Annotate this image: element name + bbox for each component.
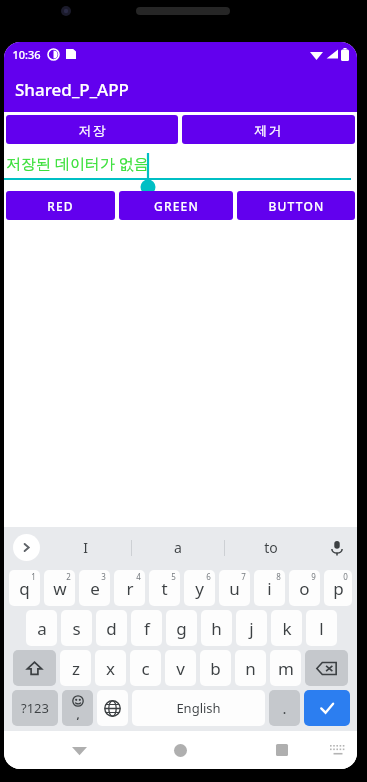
staticText: 8	[276, 571, 281, 582]
button[interactable]: Enter	[304, 690, 350, 726]
button[interactable]: i	[254, 570, 285, 606]
button[interactable]: u	[219, 570, 250, 606]
other: Emoji	[62, 690, 93, 726]
button[interactable]: I	[40, 527, 131, 568]
staticText: RED	[47, 198, 74, 214]
button[interactable]: p	[324, 570, 352, 606]
staticText: z	[72, 657, 80, 680]
staticText: a	[174, 538, 182, 557]
button[interactable]: GREEN	[119, 191, 233, 220]
button[interactable]: b	[200, 650, 231, 686]
staticText: o	[299, 577, 310, 600]
staticText: p	[333, 577, 344, 600]
button[interactable]: s	[61, 610, 92, 646]
button[interactable]: 제거	[182, 115, 355, 144]
button[interactable]: Expand toolbar	[13, 534, 40, 561]
staticText: 0	[343, 571, 348, 582]
button[interactable]: 저장된 데이터가 없음	[4, 153, 357, 185]
staticText: 1	[31, 571, 36, 582]
button[interactable]: m	[270, 650, 301, 686]
button[interactable]: d	[96, 610, 127, 646]
button[interactable]: Recent apps	[263, 731, 301, 769]
staticText: w	[53, 577, 67, 600]
staticText: 저장	[78, 122, 107, 138]
staticText: x	[106, 657, 115, 680]
button[interactable]: k	[271, 610, 302, 646]
button[interactable]: q	[9, 570, 40, 606]
staticText: Shared_P_APP	[15, 78, 129, 101]
button[interactable]: Change language	[97, 690, 128, 726]
button[interactable]: Back	[60, 731, 98, 769]
staticText: BUTTON	[268, 198, 325, 214]
button[interactable]: l	[306, 610, 337, 646]
button[interactable]: Home	[161, 731, 199, 769]
staticText: e	[90, 577, 100, 600]
staticText: n	[245, 657, 256, 680]
button[interactable]: r	[114, 570, 145, 606]
staticText: English	[176, 699, 221, 717]
staticText: 9	[311, 571, 316, 582]
button[interactable]: English	[132, 690, 265, 726]
button[interactable]: RED	[6, 191, 115, 220]
button[interactable]: Shift	[13, 650, 56, 686]
staticText: to	[264, 538, 278, 557]
button[interactable]: f	[131, 610, 162, 646]
other: Enter	[304, 690, 350, 726]
other: Shift	[13, 650, 56, 686]
staticText: 2	[66, 571, 71, 582]
staticText: m	[278, 657, 294, 680]
button[interactable]: c	[130, 650, 161, 686]
button[interactable]: o	[289, 570, 320, 606]
button[interactable]: y	[184, 570, 215, 606]
staticText: t	[161, 577, 168, 600]
staticText: 5	[171, 571, 176, 582]
other: Backspace	[305, 650, 348, 686]
staticText: g	[176, 617, 187, 640]
staticText: i	[267, 577, 272, 600]
staticText: I	[83, 538, 88, 557]
staticText: 저장된 데이터가 없음	[6, 153, 149, 173]
staticText: l	[319, 617, 324, 640]
button[interactable]: Emoji	[62, 690, 93, 726]
staticText: r	[126, 577, 134, 600]
button[interactable]: n	[235, 650, 266, 686]
button[interactable]: z	[60, 650, 91, 686]
staticText: .	[282, 698, 287, 718]
button[interactable]: x	[95, 650, 126, 686]
staticText: a	[37, 617, 47, 640]
staticText: 제거	[254, 122, 283, 138]
button[interactable]: e	[79, 570, 110, 606]
staticText: q	[19, 577, 30, 600]
button[interactable]: Backspace	[305, 650, 348, 686]
button[interactable]: h	[201, 610, 232, 646]
staticText: ?123	[21, 699, 49, 717]
staticText: 10:36	[12, 47, 41, 62]
button[interactable]: Switch keyboard	[319, 731, 357, 769]
staticText: y	[195, 577, 204, 600]
button[interactable]: .	[269, 690, 300, 726]
button[interactable]: ?123	[12, 690, 58, 726]
button[interactable]: g	[166, 610, 197, 646]
staticText: d	[106, 617, 117, 640]
staticText: 6	[206, 571, 211, 582]
staticText: h	[211, 617, 222, 640]
staticText: u	[229, 577, 240, 600]
staticText: 3	[101, 571, 106, 582]
button[interactable]: BUTTON	[237, 191, 355, 220]
button[interactable]: w	[44, 570, 75, 606]
staticText: 4	[136, 571, 141, 582]
staticText: GREEN	[154, 198, 199, 214]
staticText: f	[144, 617, 150, 640]
button[interactable]: 저장	[6, 115, 178, 144]
button[interactable]: Voice input	[317, 527, 357, 568]
staticText: c	[141, 657, 150, 680]
button[interactable]: v	[165, 650, 196, 686]
button[interactable]: a	[26, 610, 57, 646]
button[interactable]: to	[225, 527, 317, 568]
button[interactable]: j	[236, 610, 267, 646]
button[interactable]: a	[132, 527, 224, 568]
button[interactable]: t	[149, 570, 180, 606]
other: Change language	[97, 690, 128, 726]
staticText: ,	[76, 707, 80, 722]
staticText: v	[176, 657, 185, 680]
